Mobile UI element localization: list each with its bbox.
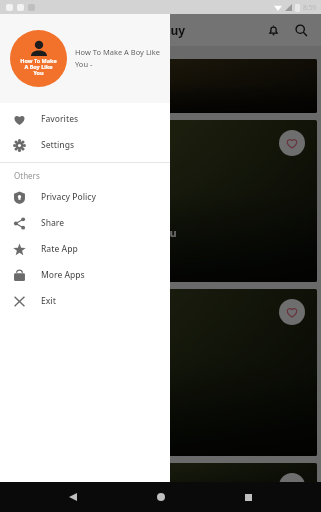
staticText: Exit xyxy=(41,295,56,307)
button[interactable]: Favorite xyxy=(4,289,317,456)
staticText: Others xyxy=(14,170,40,181)
button[interactable]: Favorite xyxy=(279,130,305,156)
button[interactable] xyxy=(4,59,317,113)
button[interactable]: Home xyxy=(147,483,175,511)
button[interactable]: Search xyxy=(289,18,313,42)
button[interactable]: Favorite xyxy=(4,120,317,282)
button[interactable]: Favorite xyxy=(4,463,317,512)
staticText: 8:59 xyxy=(303,3,316,12)
button[interactable]: Recents xyxy=(234,483,262,511)
button[interactable]: Favorite xyxy=(279,473,305,499)
staticText: How to Flirt With A Guy xyxy=(46,22,261,38)
button[interactable]: Back xyxy=(59,483,87,511)
button[interactable]: More Apps xyxy=(0,262,170,288)
staticText: Make Him Fall In Love With You xyxy=(12,226,177,240)
button[interactable]: Privacy Policy xyxy=(0,184,170,210)
staticText: How To Make A Boy Like You - How to Flir… xyxy=(75,47,164,70)
button[interactable]: Favorite xyxy=(279,299,305,325)
staticText: Share xyxy=(41,217,65,229)
staticText: Privacy Policy xyxy=(41,191,96,203)
button[interactable]: Settings xyxy=(0,132,170,158)
button[interactable]: Favorites xyxy=(0,106,170,132)
staticText: Rate App xyxy=(41,243,78,255)
button[interactable]: Exit xyxy=(0,288,170,314)
button[interactable]: Notifications xyxy=(261,18,285,42)
staticText: Favorites xyxy=(41,113,79,125)
staticText: Settings xyxy=(41,139,75,151)
button[interactable]: Rate App xyxy=(0,236,170,262)
staticText: More Apps xyxy=(41,269,85,281)
staticText: How To Make A Boy Like You xyxy=(20,57,57,77)
button[interactable]: Share xyxy=(0,210,170,236)
